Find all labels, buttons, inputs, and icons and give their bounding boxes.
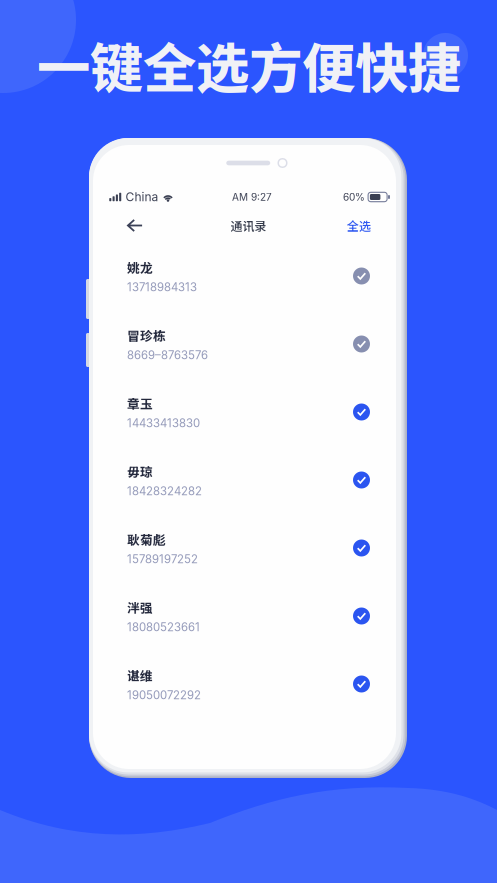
button[interactable]: 姚龙 [93,242,396,310]
button[interactable]: 毋琼 [93,446,396,514]
button[interactable]: Back [93,208,163,243]
staticText: 谌维 [127,666,153,684]
staticText: 18428324282 [127,484,202,498]
staticText: China [125,190,158,204]
staticText: 毋琼 [127,462,153,480]
staticText: 通讯录 [230,217,266,234]
button[interactable]: 冒珍栋 [93,310,396,378]
staticText: 章玉 [127,394,153,412]
staticText: AM 9:27 [232,191,272,203]
staticText: 60% [343,191,365,203]
staticText: 18080523661 [127,620,200,634]
staticText: 14433413830 [127,416,200,430]
staticText: 一键全选方便快捷 [37,26,461,103]
staticText: 耿菊彪 [127,530,166,548]
staticText: 姚龙 [127,258,153,276]
staticText: 8669–8763576 [127,348,208,362]
button[interactable]: 全选 [327,206,396,245]
staticText: 15789197252 [127,552,198,566]
staticText: 19050072292 [127,688,201,702]
button[interactable]: 章玉 [93,378,396,446]
staticText: 全选 [347,217,371,234]
staticText: 13718984313 [127,280,197,294]
button[interactable]: 谌维 [93,650,396,718]
button[interactable]: 泮强 [93,582,396,650]
staticText: 冒珍栋 [127,326,166,344]
staticText: 泮强 [127,598,153,616]
button[interactable]: 耿菊彪 [93,514,396,582]
